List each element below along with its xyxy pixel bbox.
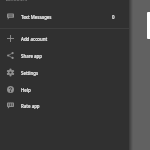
button[interactable]: Share app: [0, 47, 129, 64]
staticText: Text Messages: [21, 14, 52, 20]
staticText: 0: [112, 14, 115, 20]
button[interactable]: Settings: [0, 64, 129, 81]
staticText: Settings: [21, 70, 39, 76]
staticText: ACCOUNTS: [6, 0, 28, 2]
button[interactable]: Rate app: [0, 97, 129, 114]
staticText: Rate app: [21, 103, 40, 109]
button[interactable]: Text Messages: [0, 8, 129, 25]
button[interactable]: Add account: [0, 30, 129, 47]
staticText: Help: [21, 87, 31, 93]
button[interactable]: Help: [0, 81, 129, 98]
staticText: Share app: [21, 53, 43, 59]
staticText: Add account: [21, 36, 48, 42]
button[interactable]: Close navigation drawer: [129, 0, 150, 150]
